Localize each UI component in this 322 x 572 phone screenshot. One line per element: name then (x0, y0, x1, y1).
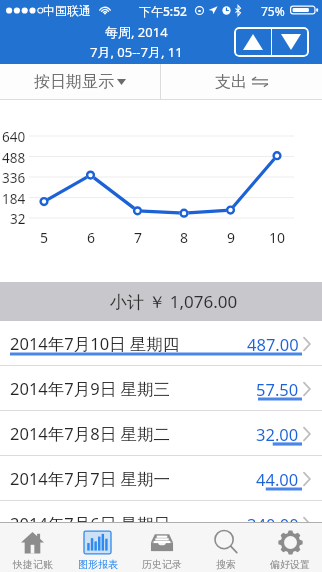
staticText: 640 (2, 128, 26, 144)
button[interactable]: 图形报表 (65, 523, 130, 572)
staticText: 32.00 (256, 423, 299, 445)
button[interactable]: 快捷记账 (0, 523, 65, 572)
button[interactable]: 偏好设置 (258, 523, 322, 572)
staticText: 每周, 2014 (105, 23, 168, 41)
button[interactable]: Next period (272, 27, 309, 57)
staticText: 偏好设置 (270, 558, 310, 571)
staticText: 搜索 (216, 558, 236, 571)
staticText: 5 (40, 228, 49, 246)
staticText: 57.50 (256, 378, 299, 400)
button[interactable]: Previous period (234, 27, 271, 57)
staticText: 8 (180, 228, 189, 246)
staticText: 184 (2, 190, 26, 206)
button[interactable]: 2014年7月7日 星期一 (0, 456, 322, 501)
staticText: 2014年7月8日 星期二 (10, 422, 170, 445)
staticText: 下午5:52 (139, 3, 187, 19)
staticText: 7月, 05--7月, 11 (90, 43, 183, 61)
staticText: 2014年7月9日 星期三 (10, 377, 170, 400)
staticText: 小计 ￥ 1,076.00 (110, 290, 238, 313)
button[interactable]: 搜索 (194, 523, 258, 572)
staticText: 32 (10, 210, 26, 226)
staticText: 7 (134, 228, 143, 246)
staticText: 2014年7月7日 星期一 (10, 467, 170, 490)
button[interactable]: 历史记录 (130, 523, 194, 572)
button[interactable]: 2014年7月6日 星期日 (0, 501, 322, 546)
button[interactable]: 按日期显示 (0, 64, 160, 100)
staticText: 2014年7月6日 星期日 (10, 512, 170, 535)
button[interactable]: 2014年7月10日 星期四 (0, 321, 322, 366)
staticText: 488 (2, 149, 26, 165)
button[interactable]: 支出 (161, 64, 322, 100)
staticText: 44.00 (256, 468, 299, 490)
staticText: 历史记录 (142, 558, 182, 571)
staticText: 9 (227, 228, 236, 246)
staticText: 10 (269, 228, 286, 246)
staticText: 487.00 (247, 333, 299, 355)
button[interactable]: 2014年7月9日 星期三 (0, 366, 322, 411)
staticText: 75% (261, 3, 285, 19)
staticText: 中国联通 (43, 3, 91, 18)
staticText: 支出 (215, 72, 247, 92)
staticText: 6 (87, 228, 96, 246)
staticText: 336 (2, 169, 26, 185)
staticText: 2014年7月10日 星期四 (10, 332, 180, 355)
button[interactable]: 2014年7月8日 星期二 (0, 411, 322, 456)
staticText: 图形报表 (78, 558, 118, 571)
staticText: 340.00 (247, 513, 299, 535)
staticText: 快捷记账 (13, 558, 53, 571)
staticText: 按日期显示 (34, 72, 114, 92)
